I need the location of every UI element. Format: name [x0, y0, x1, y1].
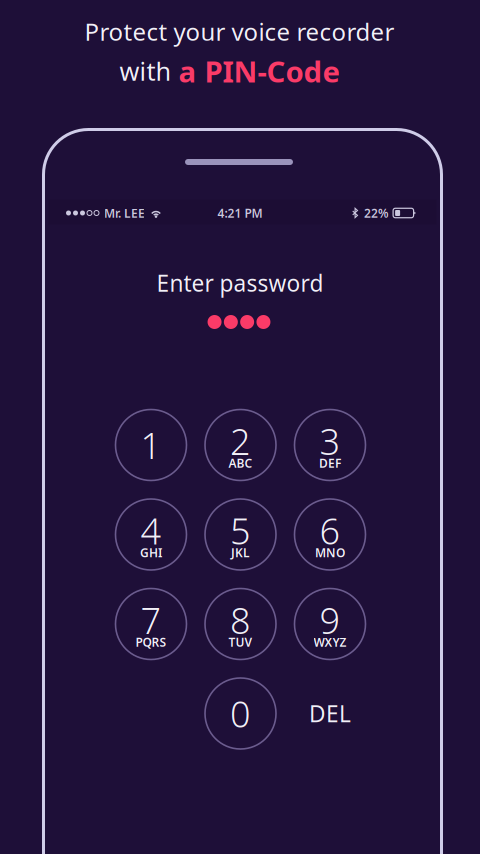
staticText: 7 — [140, 596, 161, 644]
staticText: MNO — [315, 544, 345, 560]
staticText: Mr. LEE — [104, 205, 145, 221]
staticText: DEL — [309, 698, 351, 728]
staticText: 4:21 PM — [217, 205, 262, 221]
staticText: ABC — [228, 455, 252, 471]
staticText: 2 — [230, 417, 251, 465]
staticText: PQRS — [135, 634, 166, 650]
staticText: 6 — [319, 507, 340, 554]
staticText: 3 — [319, 417, 340, 465]
button[interactable]: 0 — [205, 678, 276, 749]
button[interactable]: 8 — [205, 588, 276, 659]
staticText: with — [119, 54, 171, 88]
staticText: DEF — [319, 455, 341, 471]
staticText: Enter password — [156, 268, 323, 298]
staticText: a PIN-Code — [178, 51, 340, 90]
staticText: GHI — [140, 544, 162, 560]
staticText: 0 — [230, 690, 251, 737]
button[interactable]: 4 — [115, 499, 186, 570]
staticText: TUV — [228, 634, 252, 650]
button[interactable]: 2 — [205, 409, 276, 480]
staticText: 9 — [319, 596, 340, 644]
button[interactable]: 6 — [294, 499, 365, 570]
staticText: 22% — [364, 205, 389, 221]
button[interactable]: 1 — [115, 409, 186, 480]
staticText: 4 — [140, 507, 161, 554]
button[interactable]: 3 — [294, 409, 365, 480]
staticText: 8 — [230, 596, 251, 644]
button[interactable]: 9 — [294, 588, 365, 659]
staticText: 5 — [230, 507, 251, 554]
staticText: JKL — [231, 544, 250, 560]
staticText: Protect your voice recorder — [84, 16, 394, 47]
button[interactable]: Delete — [294, 678, 365, 749]
button[interactable]: 7 — [115, 588, 186, 659]
staticText: WXYZ — [313, 634, 346, 650]
staticText: 1 — [140, 421, 161, 469]
button[interactable]: 5 — [205, 499, 276, 570]
